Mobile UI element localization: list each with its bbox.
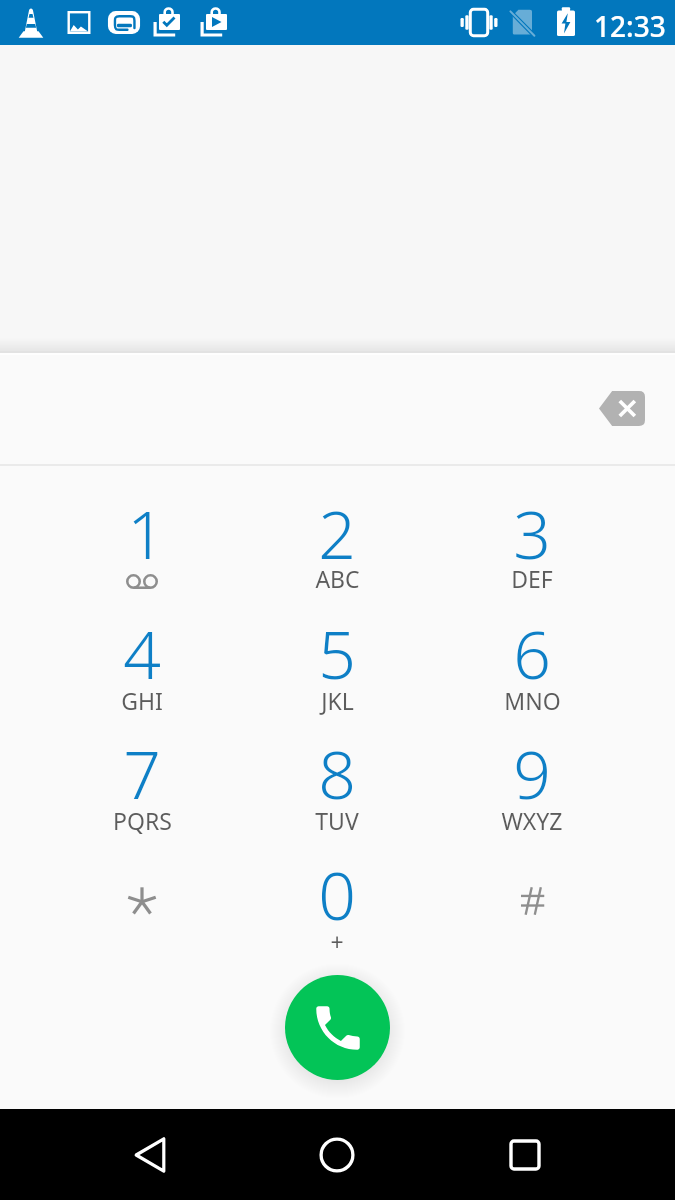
staticText: 9: [513, 728, 551, 818]
staticText: 12:33: [594, 7, 666, 45]
button[interactable]: 8: [240, 725, 434, 845]
button[interactable]: 3: [435, 485, 629, 605]
button[interactable]: 9: [435, 725, 629, 845]
staticText: 8: [318, 728, 356, 818]
staticText: GHI: [121, 685, 163, 716]
staticText: MNO: [504, 685, 561, 716]
staticText: JKL: [321, 685, 354, 716]
staticText: DEF: [511, 563, 553, 594]
staticText: TUV: [315, 805, 359, 836]
button[interactable]: 5: [240, 605, 434, 725]
staticText: PQRS: [113, 805, 172, 836]
button[interactable]: 1: [45, 485, 239, 605]
button[interactable]: 7: [45, 725, 239, 845]
button[interactable]: Backspace: [586, 381, 658, 435]
staticText: 0: [318, 849, 356, 939]
staticText: +: [330, 926, 344, 957]
button[interactable]: 6: [435, 605, 629, 725]
staticText: ABC: [315, 563, 360, 594]
button[interactable]: 4: [45, 605, 239, 725]
staticText: 6: [513, 608, 551, 698]
staticText: 7: [123, 728, 161, 818]
button[interactable]: [435, 846, 629, 966]
staticText: WXYZ: [501, 805, 563, 836]
button[interactable]: Recents: [485, 1115, 565, 1195]
button[interactable]: 0: [240, 846, 434, 966]
staticText: 5: [318, 608, 356, 698]
staticText: 1: [127, 488, 165, 578]
button[interactable]: [45, 846, 239, 966]
staticText: 3: [513, 488, 551, 578]
button[interactable]: 2: [240, 485, 434, 605]
button[interactable]: Home: [297, 1115, 377, 1195]
staticText: 4: [123, 608, 161, 698]
staticText: 2: [318, 488, 356, 578]
button[interactable]: Back: [110, 1115, 190, 1195]
button[interactable]: Call: [285, 975, 390, 1080]
